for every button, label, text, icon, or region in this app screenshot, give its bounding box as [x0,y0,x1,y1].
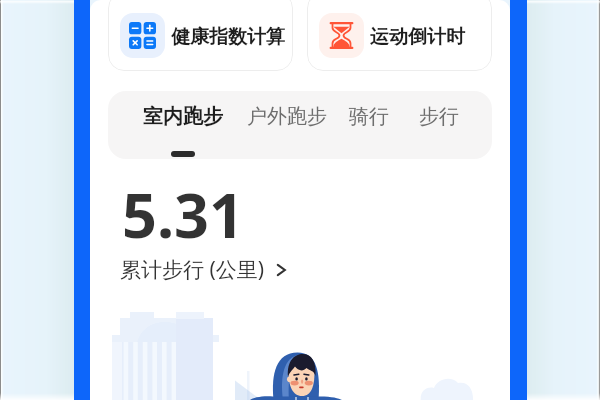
button[interactable]: 骑行 [349,91,389,159]
button[interactable]: 步行 [419,91,459,159]
staticText: 5.31 [122,173,244,256]
button[interactable]: 健康指数计算 [108,0,293,71]
button[interactable]: 室内跑步 [143,91,223,159]
staticText: 户外跑步 [247,104,327,129]
staticText: 运动倒计时 [370,25,465,49]
button[interactable]: 累计步行 (公里) [120,255,289,284]
button[interactable]: 户外跑步 [247,91,327,159]
staticText: 骑行 [349,104,389,129]
staticText: 室内跑步 [143,104,223,129]
staticText: 步行 [419,104,459,129]
button[interactable]: 运动倒计时 [307,0,492,71]
staticText: 累计步行 (公里) [120,255,265,284]
staticText: 健康指数计算 [171,25,285,49]
